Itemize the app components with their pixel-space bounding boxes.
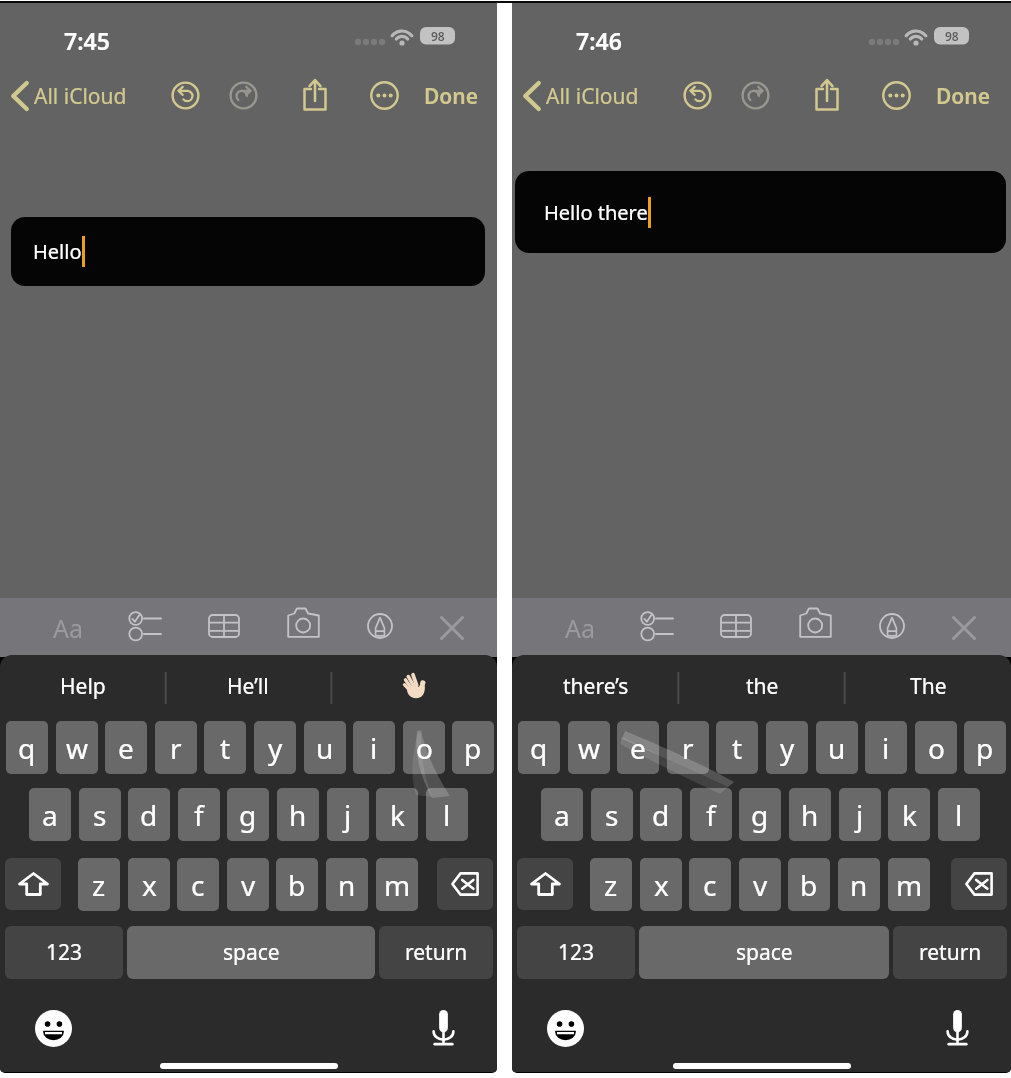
button[interactable]: l bbox=[938, 788, 980, 841]
button[interactable]: Emoji keyboard bbox=[35, 1010, 72, 1047]
button[interactable]: q bbox=[6, 721, 48, 774]
button[interactable]: Undo bbox=[171, 81, 200, 110]
button[interactable]: Close keyboard bbox=[952, 616, 976, 640]
button[interactable]: g bbox=[739, 788, 781, 841]
button[interactable]: The bbox=[845, 655, 1011, 717]
button[interactable]: t bbox=[204, 721, 246, 774]
button[interactable]: Text format bbox=[47, 611, 89, 645]
button[interactable]: h bbox=[277, 788, 319, 841]
button[interactable]: space bbox=[639, 926, 889, 979]
button[interactable]: Checklist bbox=[639, 609, 675, 645]
staticText: f bbox=[706, 796, 716, 834]
button[interactable]: Close keyboard bbox=[440, 616, 464, 640]
button[interactable]: y bbox=[254, 721, 296, 774]
button[interactable]: Checklist bbox=[127, 609, 163, 645]
button[interactable]: y bbox=[766, 721, 808, 774]
button[interactable]: Share bbox=[303, 79, 327, 111]
button[interactable]: n bbox=[326, 858, 368, 911]
button[interactable]: j bbox=[839, 788, 881, 841]
button[interactable]: More options bbox=[882, 81, 911, 110]
button[interactable]: t bbox=[716, 721, 758, 774]
button[interactable]: b bbox=[788, 858, 830, 911]
button[interactable] bbox=[951, 858, 1007, 910]
button[interactable]: a bbox=[541, 788, 583, 841]
button[interactable] bbox=[437, 858, 493, 910]
button[interactable]: m bbox=[376, 858, 418, 911]
button[interactable]: return bbox=[893, 926, 1007, 979]
button[interactable]: o bbox=[915, 721, 957, 774]
button[interactable]: Undo bbox=[683, 81, 712, 110]
button[interactable]: 123 bbox=[517, 926, 635, 979]
button[interactable]: q bbox=[518, 721, 560, 774]
button[interactable]: Done bbox=[930, 70, 997, 122]
button[interactable]: i bbox=[865, 721, 907, 774]
button[interactable]: m bbox=[888, 858, 930, 911]
button[interactable]: b bbox=[276, 858, 318, 911]
button[interactable]: Table bbox=[208, 614, 240, 638]
button[interactable]: Help bbox=[0, 655, 165, 717]
button[interactable]: Dictate bbox=[946, 1009, 969, 1046]
button[interactable]: Redo bbox=[229, 81, 258, 110]
button[interactable]: o bbox=[403, 721, 445, 774]
button[interactable]: Camera bbox=[799, 607, 832, 638]
button[interactable]: h bbox=[789, 788, 831, 841]
button[interactable]: s bbox=[591, 788, 633, 841]
button[interactable]: there’s bbox=[512, 655, 679, 717]
button[interactable]: All iCloud bbox=[8, 70, 127, 122]
button[interactable]: r bbox=[155, 721, 197, 774]
button[interactable] bbox=[331, 655, 497, 717]
button[interactable]: Done bbox=[418, 70, 485, 122]
button[interactable]: Hello bbox=[11, 217, 485, 286]
button[interactable]: 123 bbox=[5, 926, 123, 979]
button[interactable] bbox=[517, 858, 573, 910]
button[interactable]: i bbox=[353, 721, 395, 774]
button[interactable]: n bbox=[838, 858, 880, 911]
button[interactable]: k bbox=[376, 788, 418, 841]
button[interactable]: j bbox=[327, 788, 369, 841]
button[interactable]: k bbox=[888, 788, 930, 841]
button[interactable]: Redo bbox=[741, 81, 770, 110]
button[interactable]: l bbox=[426, 788, 468, 841]
button[interactable]: r bbox=[667, 721, 709, 774]
button[interactable]: v bbox=[739, 858, 781, 911]
button[interactable]: f bbox=[690, 788, 732, 841]
button[interactable]: Table bbox=[720, 614, 752, 638]
button[interactable]: d bbox=[128, 788, 170, 841]
button[interactable]: Share bbox=[815, 79, 839, 111]
button[interactable]: Emoji keyboard bbox=[547, 1010, 584, 1047]
button[interactable]: x bbox=[640, 858, 682, 911]
button[interactable]: f bbox=[178, 788, 220, 841]
button[interactable]: Markup bbox=[367, 613, 393, 639]
button[interactable]: Markup bbox=[879, 613, 905, 639]
button[interactable]: d bbox=[640, 788, 682, 841]
button[interactable]: w bbox=[56, 721, 98, 774]
button[interactable]: Text format bbox=[559, 611, 601, 645]
button[interactable]: u bbox=[304, 721, 346, 774]
button[interactable]: a bbox=[29, 788, 71, 841]
button[interactable]: return bbox=[379, 926, 493, 979]
button[interactable]: All iCloud bbox=[520, 70, 639, 122]
button[interactable]: u bbox=[816, 721, 858, 774]
button[interactable]: g bbox=[227, 788, 269, 841]
button[interactable]: e bbox=[617, 721, 659, 774]
button[interactable]: Camera bbox=[287, 607, 320, 638]
button[interactable]: More options bbox=[370, 81, 399, 110]
button[interactable]: z bbox=[590, 858, 632, 911]
button[interactable]: the bbox=[679, 655, 845, 717]
button[interactable]: p bbox=[964, 721, 1006, 774]
button[interactable]: c bbox=[689, 858, 731, 911]
button[interactable]: space bbox=[127, 926, 375, 979]
button[interactable]: He’ll bbox=[165, 655, 331, 717]
button[interactable]: v bbox=[227, 858, 269, 911]
button[interactable]: Dictate bbox=[432, 1009, 455, 1046]
button[interactable]: x bbox=[128, 858, 170, 911]
staticText: d bbox=[652, 796, 670, 834]
button[interactable]: z bbox=[78, 858, 120, 911]
button[interactable]: p bbox=[452, 721, 494, 774]
button[interactable]: Hello there bbox=[515, 171, 1006, 253]
button[interactable]: c bbox=[177, 858, 219, 911]
button[interactable]: w bbox=[568, 721, 610, 774]
button[interactable]: e bbox=[105, 721, 147, 774]
button[interactable] bbox=[5, 858, 61, 910]
button[interactable]: s bbox=[79, 788, 121, 841]
